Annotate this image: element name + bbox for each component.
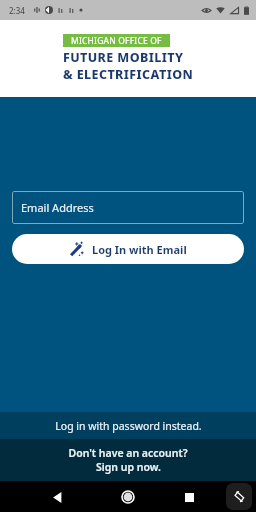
staticText: Sign up now. (96, 460, 161, 474)
button[interactable]: Home (115, 484, 141, 510)
staticText: Log In with Email (92, 242, 187, 257)
button[interactable]: Email Address (12, 191, 244, 224)
button[interactable]: Log in with password instead. (0, 412, 256, 439)
button[interactable]: Rotate screen (226, 483, 252, 510)
staticText: Log in with password instead. (55, 419, 202, 433)
button[interactable]: Back (45, 485, 69, 509)
button[interactable]: Don't have an account? (0, 439, 256, 481)
button[interactable]: Recent apps (177, 485, 201, 509)
staticText: MICHIGAN OFFICE OF (71, 35, 162, 47)
staticText: & ELECTRIFICATION (63, 66, 194, 83)
staticText: 2:34 (9, 5, 25, 16)
staticText: Email Address (21, 200, 94, 215)
staticText: Don't have an account? (68, 446, 188, 460)
staticText: FUTURE MOBILITY (63, 49, 184, 66)
button[interactable]: Log In with Email (12, 234, 244, 264)
